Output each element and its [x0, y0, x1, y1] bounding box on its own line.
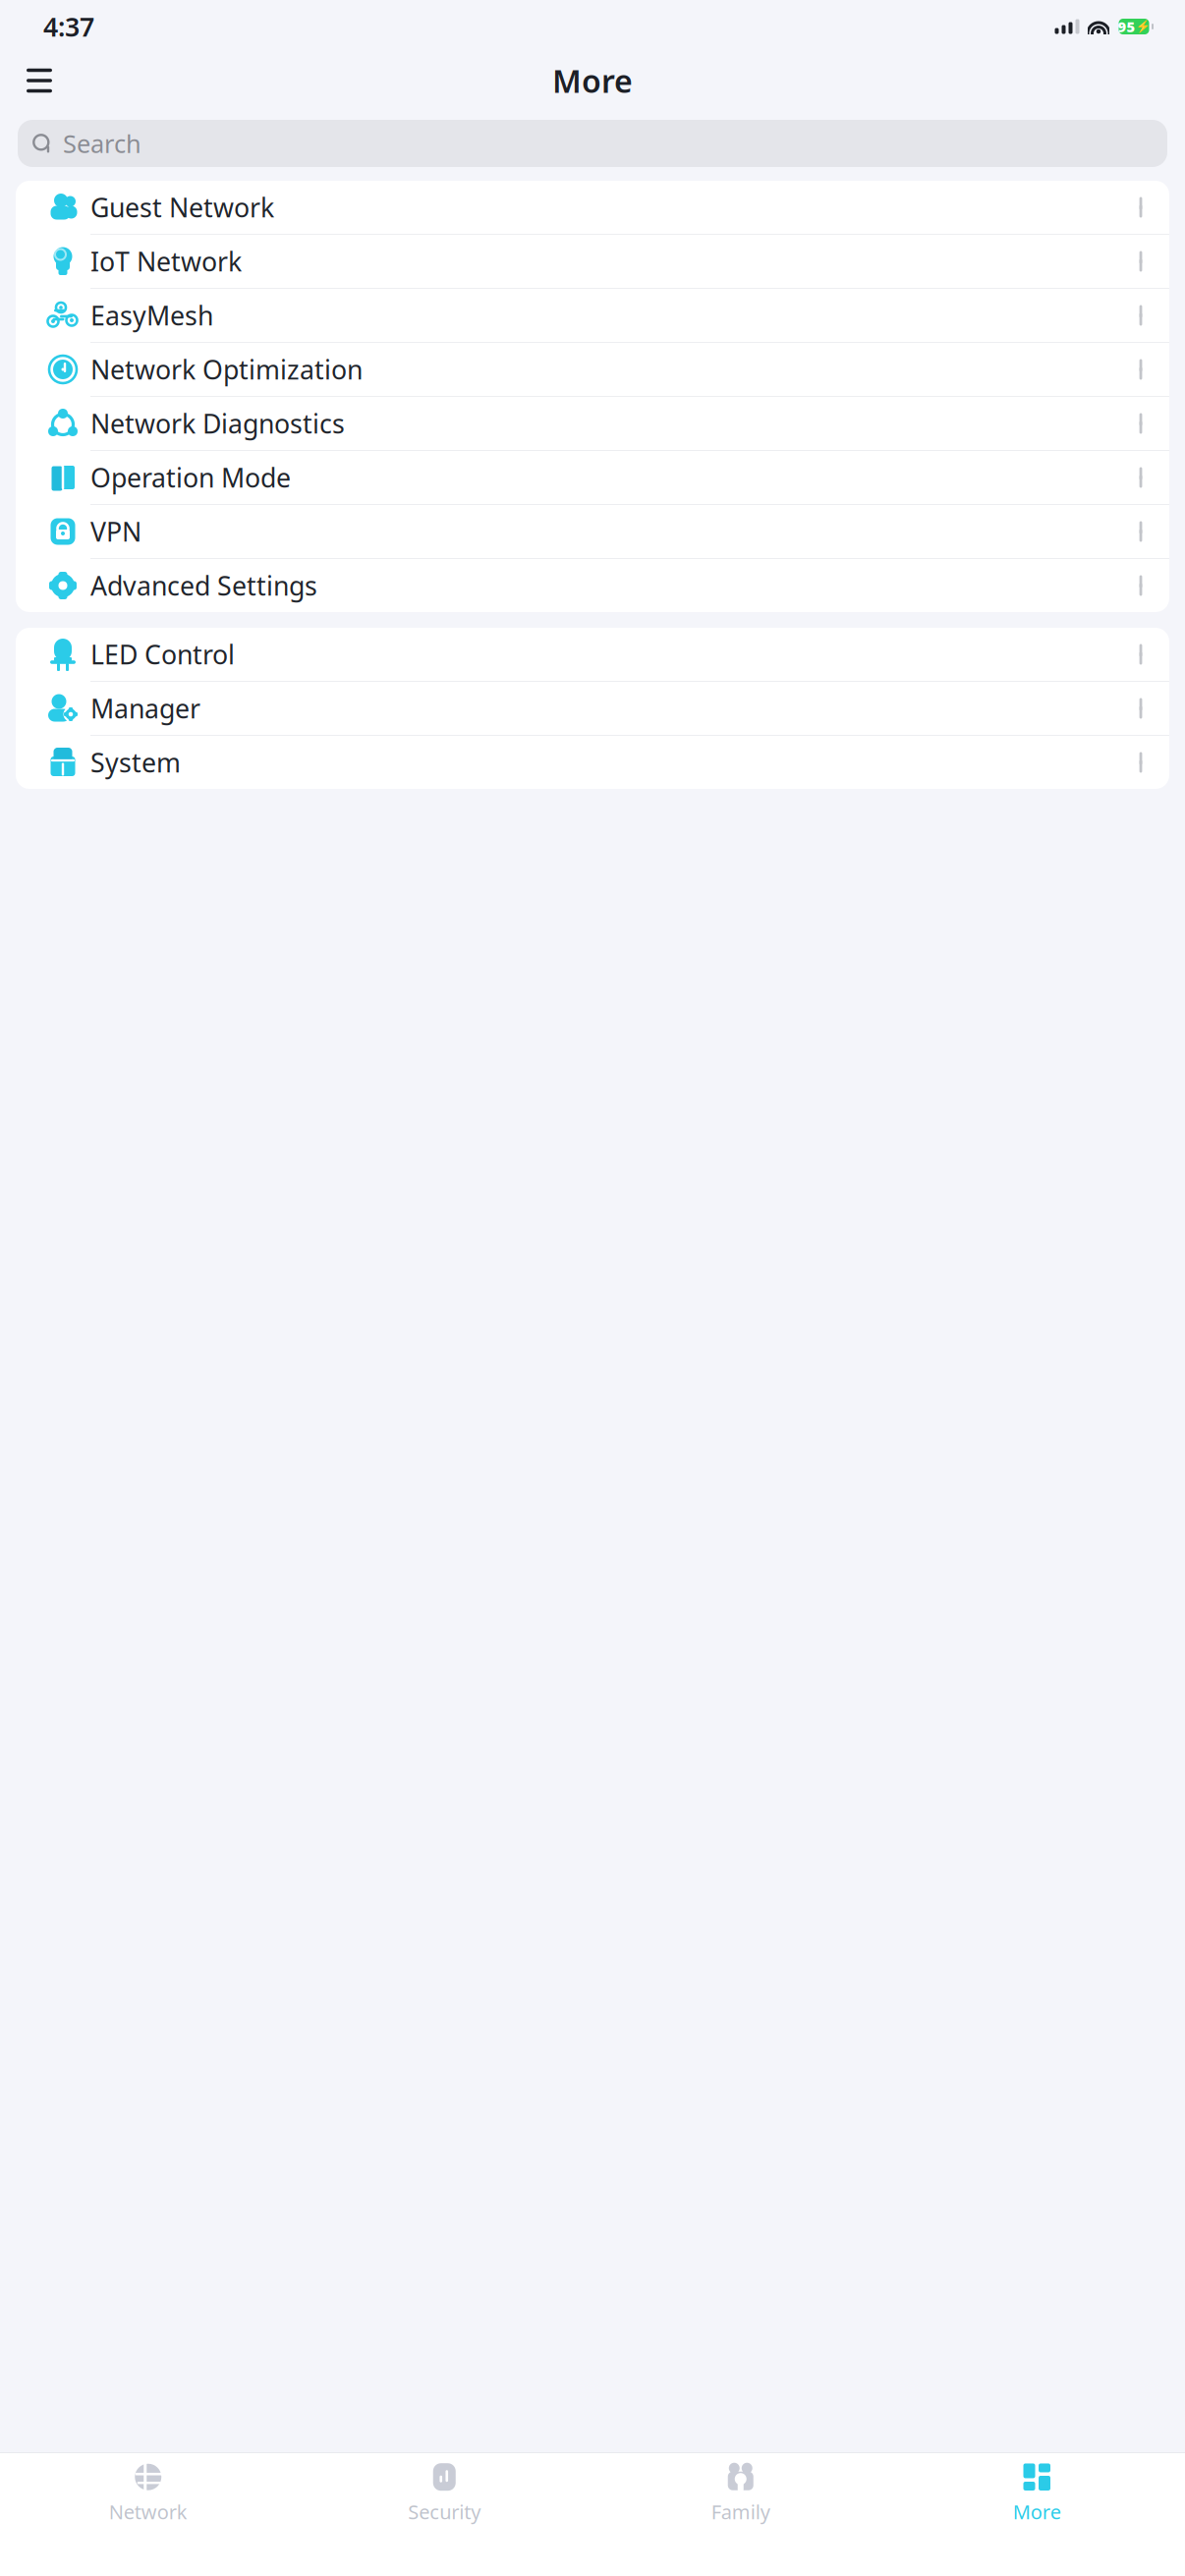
staticText: Operation Mode: [90, 460, 291, 495]
staticText: Security: [408, 2499, 481, 2525]
button[interactable]: Family: [592, 2452, 889, 2531]
staticText: Manager: [90, 691, 200, 726]
button[interactable]: LED Control: [16, 628, 1169, 682]
staticText: Family: [711, 2499, 770, 2525]
button[interactable]: Network Optimization: [16, 343, 1169, 397]
button[interactable]: VPN: [16, 505, 1169, 559]
staticText: Network: [109, 2499, 187, 2525]
staticText: 4:37: [43, 9, 94, 44]
staticText: Guest Network: [90, 190, 274, 225]
button[interactable]: Advanced Settings: [16, 559, 1169, 612]
staticText: Search: [63, 127, 141, 160]
staticText: EasyMesh: [90, 298, 213, 333]
staticText: 95: [1118, 17, 1135, 36]
staticText: Advanced Settings: [90, 568, 317, 603]
staticText: More: [1013, 2499, 1061, 2525]
button[interactable]: Manager: [16, 682, 1169, 736]
button[interactable]: Security: [296, 2452, 592, 2531]
button[interactable]: Operation Mode: [16, 451, 1169, 505]
staticText: IoT Network: [90, 244, 242, 279]
staticText: Network Diagnostics: [90, 406, 345, 441]
staticText: VPN: [90, 514, 141, 549]
staticText: LED Control: [90, 637, 235, 672]
button[interactable]: System: [16, 736, 1169, 789]
button[interactable]: Search: [18, 120, 1167, 167]
button[interactable]: More: [889, 2452, 1185, 2531]
button[interactable]: Network: [0, 2452, 296, 2531]
button[interactable]: EasyMesh: [16, 289, 1169, 343]
button[interactable]: Network Diagnostics: [16, 397, 1169, 451]
button[interactable]: Menu: [16, 59, 63, 102]
staticText: ⚡: [1135, 20, 1150, 33]
staticText: More: [552, 60, 633, 101]
button[interactable]: IoT Network: [16, 235, 1169, 289]
button[interactable]: Guest Network: [16, 181, 1169, 235]
staticText: Network Optimization: [90, 352, 363, 387]
staticText: System: [90, 745, 181, 780]
